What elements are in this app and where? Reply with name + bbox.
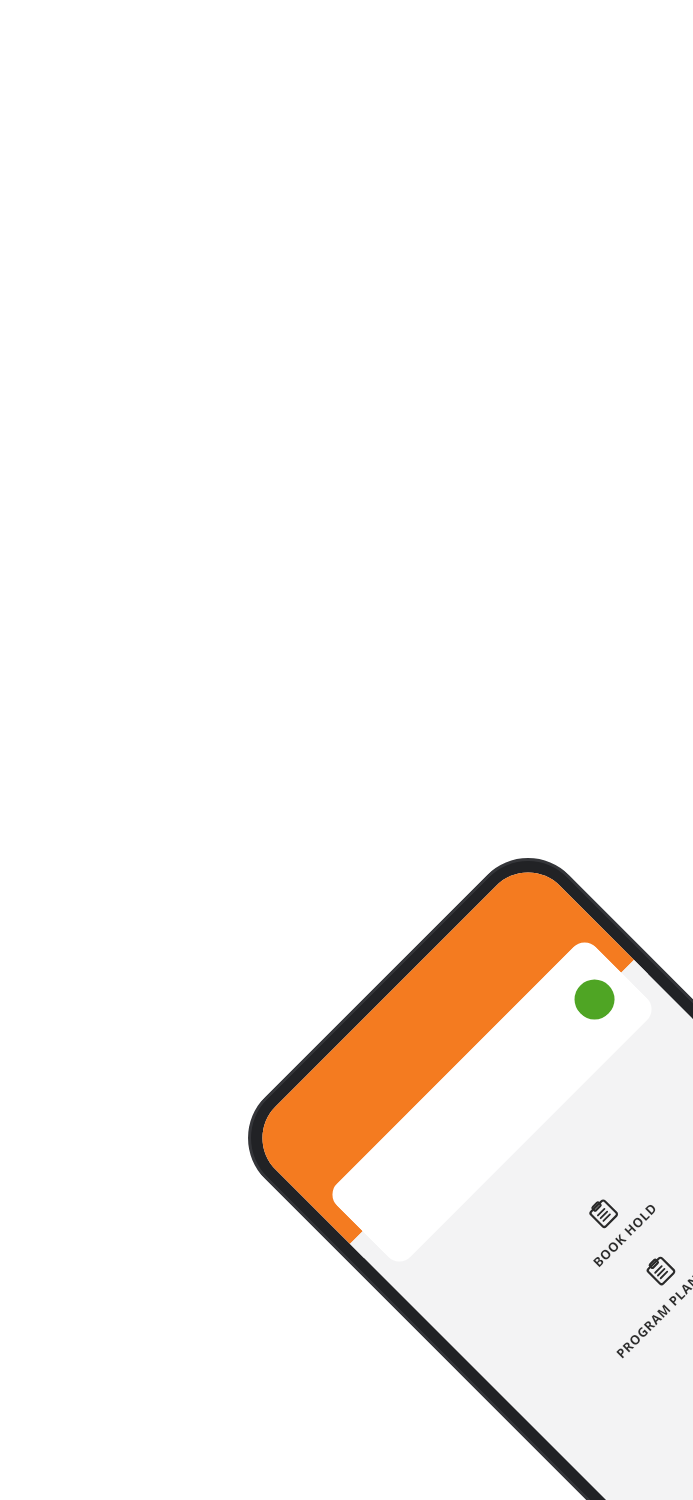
other: Clipboard [642, 1252, 679, 1289]
button[interactable]: Clipboard [499, 1109, 693, 1450]
staticText: PROGRAM PLANLÆGNING [612, 1221, 693, 1362]
staticText: BOOK HOLD [589, 1199, 661, 1271]
button[interactable] [326, 936, 658, 1268]
button[interactable]: Clipboard [442, 1052, 693, 1393]
button[interactable]: Open door [556, 1166, 693, 1500]
other: Clipboard [585, 1195, 621, 1231]
